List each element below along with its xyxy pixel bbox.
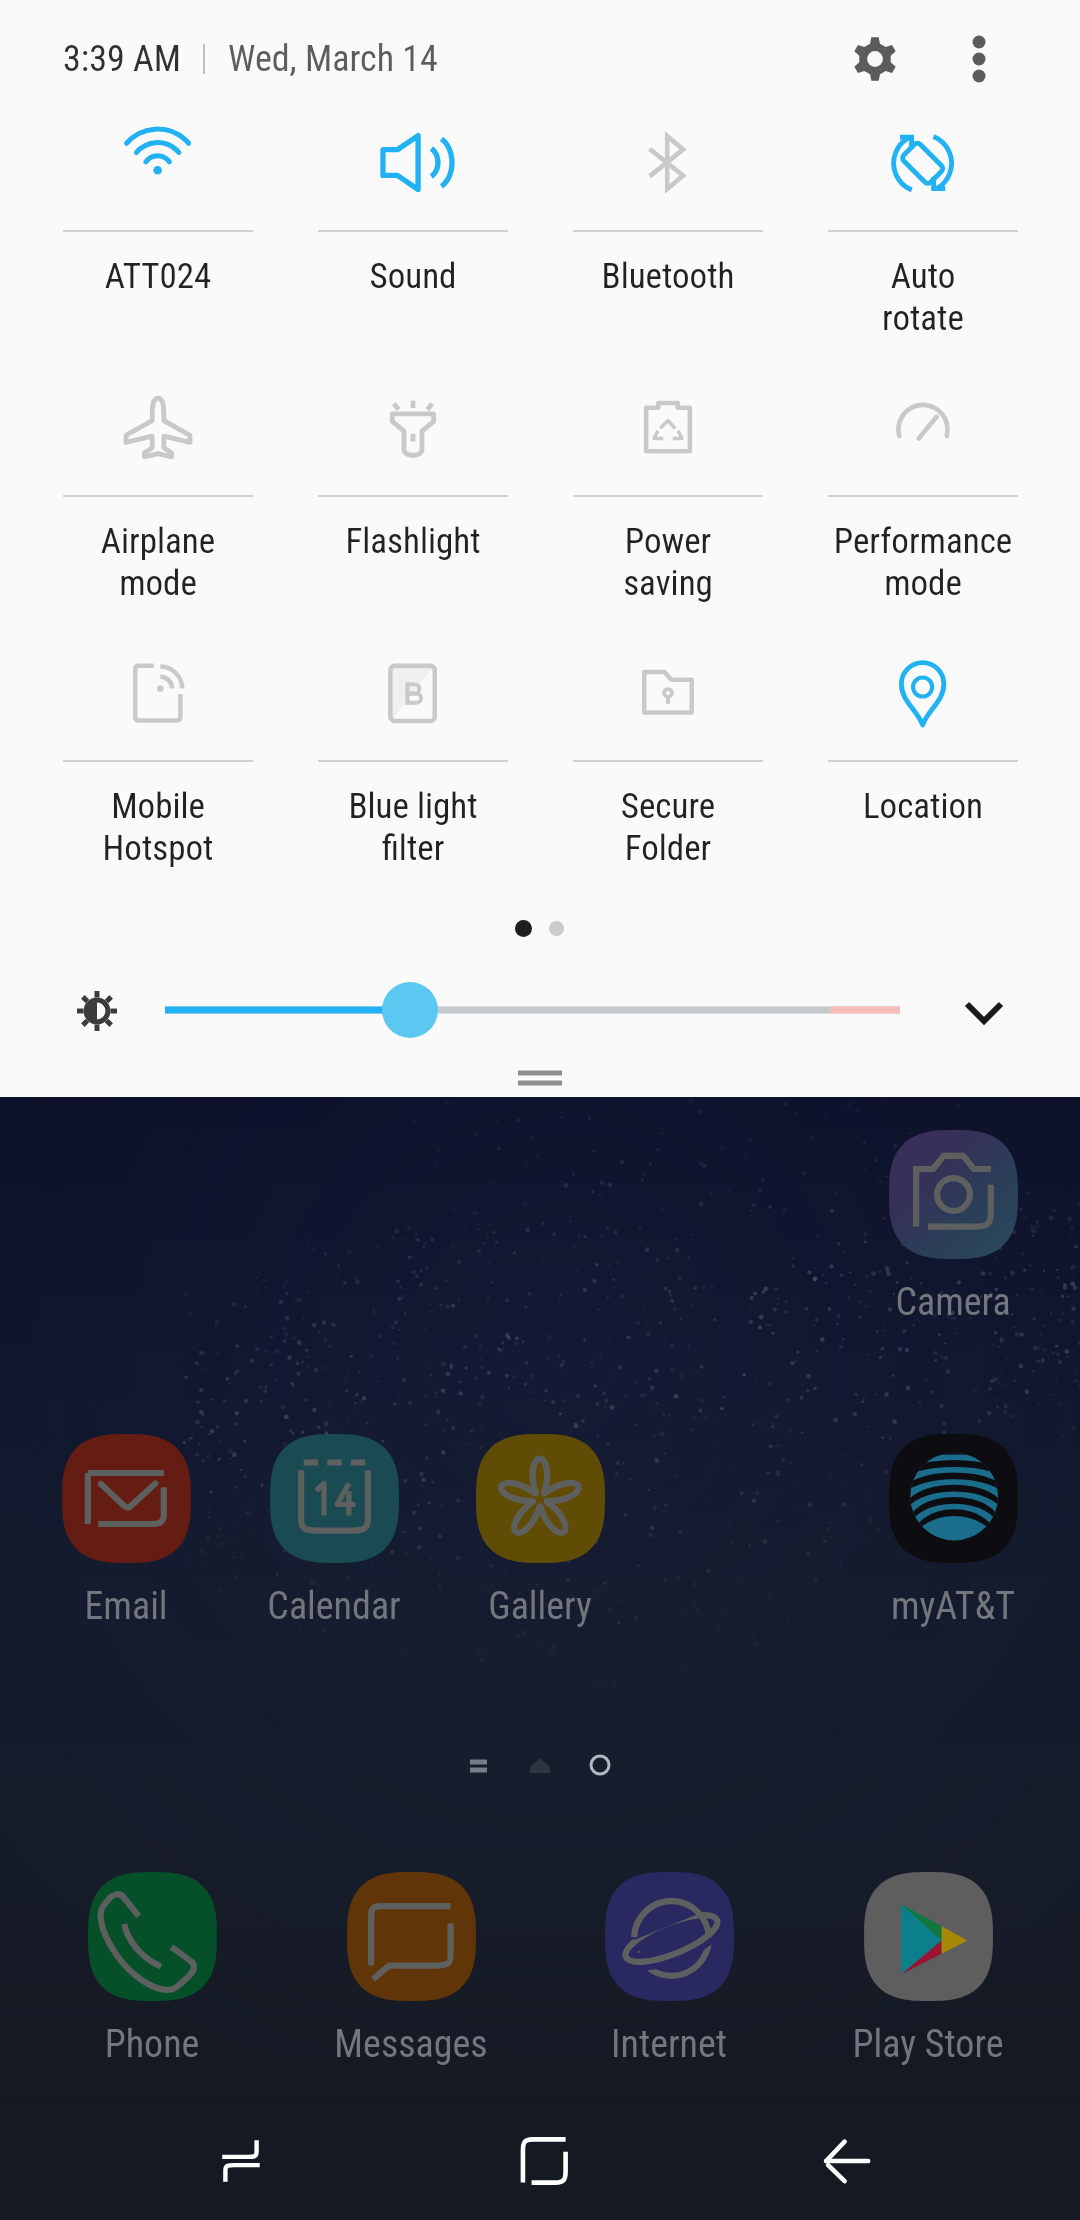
- button[interactable]: Performance mode: [828, 377, 1018, 604]
- staticText: Gallery: [430, 1584, 650, 1629]
- staticText: Calendar: [224, 1584, 444, 1629]
- staticText: Sound: [318, 256, 508, 297]
- button[interactable]: Phone: [42, 1871, 262, 2067]
- button[interactable]: Gallery: [430, 1433, 650, 1629]
- button[interactable]: Email: [16, 1433, 236, 1629]
- button[interactable]: Auto rotate: [828, 112, 1018, 339]
- button[interactable]: Expand quick settings: [948, 975, 1020, 1047]
- staticText: 3:39 AM: [63, 38, 181, 80]
- staticText: Flashlight: [318, 521, 508, 562]
- button[interactable]: Mobile Hotspot: [63, 642, 253, 869]
- staticText: Play Store: [818, 2022, 1038, 2067]
- button[interactable]: ATT024: [63, 112, 253, 297]
- staticText: myAT&T: [843, 1584, 1063, 1629]
- staticText: Power saving: [573, 521, 763, 604]
- staticText: Messages: [301, 2022, 521, 2067]
- staticText: Camera: [843, 1280, 1063, 1325]
- button[interactable]: Recents: [201, 2121, 281, 2201]
- staticText: Email: [16, 1584, 236, 1629]
- staticText: Performance mode: [828, 521, 1018, 604]
- staticText: Secure Folder: [573, 786, 763, 869]
- button[interactable]: Camera: [843, 1129, 1063, 1325]
- staticText: Location: [828, 786, 1018, 827]
- button[interactable]: Calendar: [224, 1433, 444, 1629]
- button[interactable]: Sound: [318, 112, 508, 297]
- button[interactable]: Brightness: [61, 975, 133, 1047]
- staticText: Auto rotate: [828, 256, 1018, 339]
- button[interactable]: Airplane mode: [63, 377, 253, 604]
- button[interactable]: Messages: [301, 1871, 521, 2067]
- staticText: Wed, March 14: [228, 38, 438, 80]
- staticText: Bluetooth: [573, 256, 763, 297]
- staticText: Blue light filter: [318, 786, 508, 869]
- button[interactable]: myAT&T: [843, 1433, 1063, 1629]
- button[interactable]: Blue light filter: [318, 642, 508, 869]
- staticText: Mobile Hotspot: [63, 786, 253, 869]
- button[interactable]: Power saving: [573, 377, 763, 604]
- button[interactable]: More options: [942, 22, 1016, 96]
- staticText: Phone: [42, 2022, 262, 2067]
- button[interactable]: Home: [504, 2121, 584, 2201]
- staticText: ATT024: [63, 256, 253, 297]
- button[interactable]: Location: [828, 642, 1018, 827]
- staticText: Airplane mode: [63, 521, 253, 604]
- button[interactable]: Play Store: [818, 1871, 1038, 2067]
- button[interactable]: Bluetooth: [573, 112, 763, 297]
- button[interactable]: Flashlight: [318, 377, 508, 562]
- button[interactable]: Back: [808, 2121, 888, 2201]
- button[interactable]: Internet: [559, 1871, 779, 2067]
- button[interactable]: Secure Folder: [573, 642, 763, 869]
- button[interactable]: Settings: [838, 22, 912, 96]
- staticText: Internet: [559, 2022, 779, 2067]
